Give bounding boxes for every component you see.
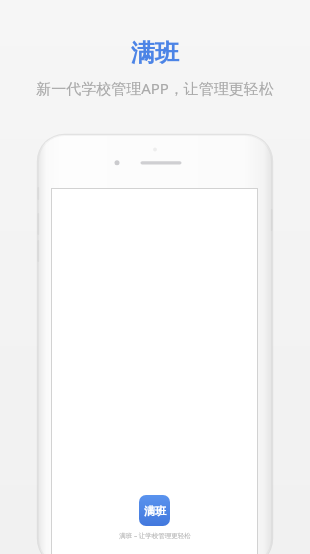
staticText: 满班 – 让学校管理更轻松 <box>119 531 191 540</box>
button[interactable]: 满班 App <box>139 495 170 526</box>
staticText: 满班 <box>144 504 166 518</box>
staticText: 满班 <box>131 38 179 68</box>
staticText: 新一代学校管理APP，让管理更轻松 <box>36 78 274 98</box>
